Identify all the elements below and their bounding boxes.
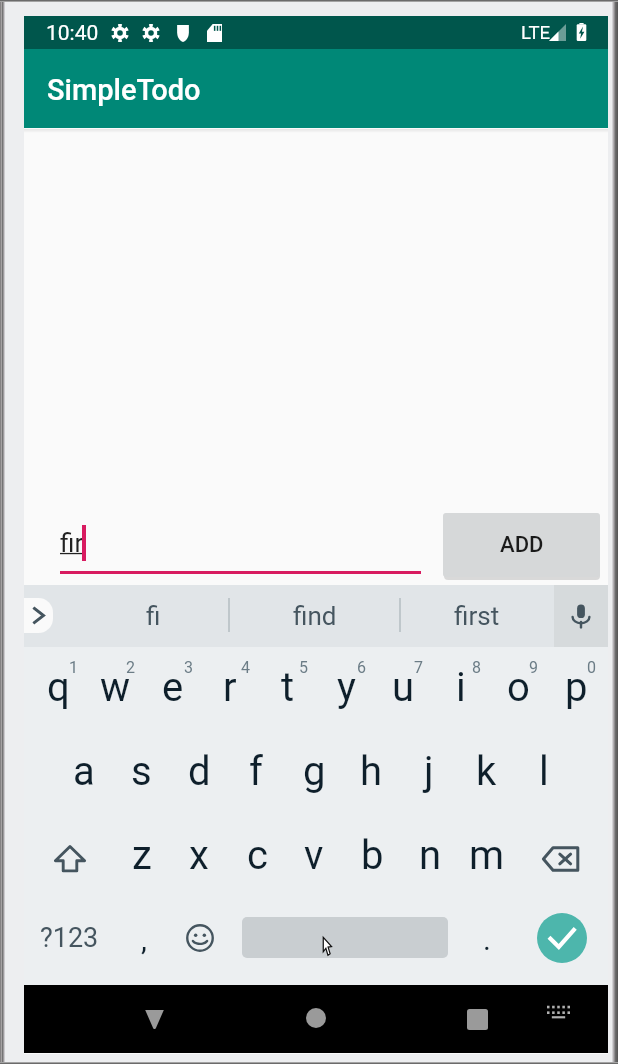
button[interactable]: k (458, 734, 514, 819)
staticText: 3 (184, 658, 193, 677)
staticText: j (424, 748, 434, 795)
staticText: . (483, 922, 491, 957)
button[interactable]: a (56, 734, 112, 819)
button[interactable]: p (548, 650, 604, 735)
staticText: h (360, 748, 383, 795)
button[interactable]: n (402, 818, 458, 903)
staticText: first (454, 601, 500, 631)
button[interactable]: i (433, 650, 489, 735)
staticText: w (100, 664, 131, 711)
button[interactable]: g (286, 734, 342, 819)
button[interactable]: , (116, 901, 172, 986)
staticText: ?123 (40, 922, 99, 954)
button[interactable]: x (171, 818, 227, 903)
button[interactable]: m (459, 818, 515, 903)
staticText: 9 (529, 658, 538, 677)
button[interactable]: ADD (443, 513, 600, 577)
button[interactable]: w (87, 650, 143, 735)
button[interactable]: find (229, 585, 400, 647)
staticText: z (132, 832, 152, 879)
staticText: ADD (500, 532, 544, 558)
staticText: fi (146, 601, 161, 631)
button[interactable]: y (318, 650, 374, 735)
button[interactable]: d (171, 734, 227, 819)
button[interactable]: q (30, 650, 86, 735)
staticText: v (304, 832, 324, 879)
button[interactable]: e (145, 650, 201, 735)
button[interactable]: Back (126, 992, 182, 1048)
staticText: q (47, 664, 70, 711)
button[interactable]: z (114, 818, 170, 903)
button[interactable]: s (113, 734, 169, 819)
staticText: u (392, 664, 415, 711)
staticText: 5 (299, 658, 308, 677)
staticText: m (469, 832, 505, 879)
button[interactable]: o (490, 650, 546, 735)
staticText: e (162, 664, 184, 711)
button[interactable]: Expand (24, 598, 53, 633)
button[interactable]: Recents (449, 991, 505, 1047)
staticText: c (247, 832, 268, 879)
staticText: 4 (241, 658, 250, 677)
button[interactable]: . (459, 901, 515, 986)
staticText: 6 (357, 658, 366, 677)
staticText: y (337, 664, 356, 711)
button[interactable]: Home (288, 990, 344, 1046)
button[interactable]: Enter (537, 913, 587, 963)
staticText: a (73, 748, 95, 795)
staticText: o (507, 664, 530, 711)
staticText: l (539, 748, 549, 795)
button[interactable]: ?123 (36, 898, 102, 983)
staticText: LTE (521, 22, 551, 44)
staticText: p (565, 664, 588, 711)
staticText: 1 (69, 658, 78, 677)
button[interactable]: t (260, 650, 316, 735)
staticText: t (281, 664, 295, 711)
staticText: SimpleTodo (47, 73, 201, 107)
staticText: n (419, 832, 442, 879)
staticText: fir (60, 528, 84, 558)
button[interactable]: Space (242, 917, 448, 958)
button[interactable]: v (286, 818, 342, 903)
staticText: 0 (587, 658, 596, 677)
button[interactable]: j (401, 734, 457, 819)
staticText: 10:40 (46, 21, 99, 46)
staticText: g (303, 748, 326, 795)
staticText: s (131, 748, 152, 795)
button[interactable]: first (400, 585, 554, 647)
staticText: , (141, 922, 147, 957)
button[interactable]: fir (60, 518, 421, 573)
button[interactable]: f (228, 734, 284, 819)
staticText: 8 (472, 658, 481, 677)
button[interactable]: c (229, 818, 285, 903)
staticText: r (223, 664, 237, 711)
staticText: i (456, 664, 466, 711)
staticText: d (188, 748, 211, 795)
button[interactable]: Shift (41, 816, 99, 901)
button[interactable]: b (344, 818, 400, 903)
button[interactable]: Hide keyboard (534, 991, 583, 1040)
button[interactable]: u (375, 650, 431, 735)
staticText: 2 (126, 658, 135, 677)
button[interactable]: Voice input (554, 585, 608, 647)
staticText: k (476, 748, 497, 795)
staticText: f (249, 748, 263, 795)
staticText: b (361, 832, 384, 879)
button[interactable]: Emoji (172, 901, 228, 986)
staticText: 7 (414, 658, 423, 677)
button[interactable]: r (202, 650, 258, 735)
button[interactable]: fi (53, 585, 229, 647)
staticText: x (189, 832, 209, 879)
staticText: find (293, 601, 337, 631)
button[interactable]: Backspace (532, 816, 590, 901)
button[interactable]: l (516, 734, 572, 819)
button[interactable]: h (343, 734, 399, 819)
